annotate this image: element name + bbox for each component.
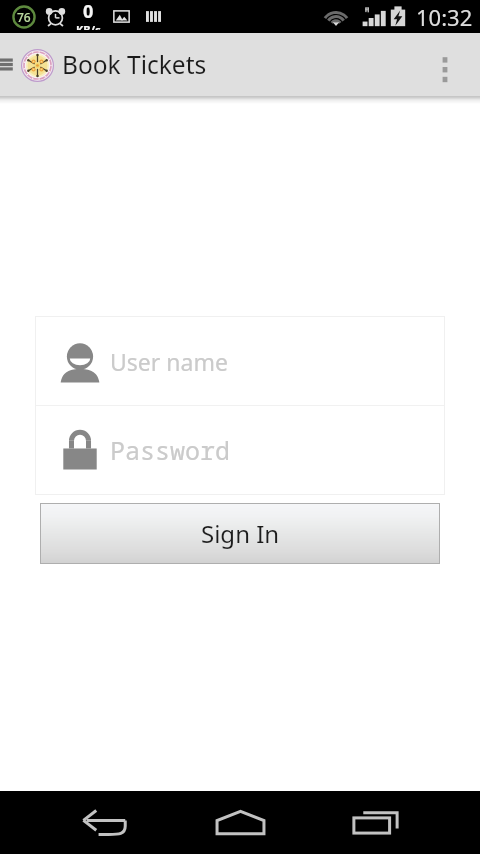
- button[interactable]: App logo: [17, 45, 57, 85]
- staticText: 10:32: [416, 2, 473, 32]
- staticText: KB/s: [76, 22, 101, 30]
- button[interactable]: Back: [63, 791, 147, 854]
- staticText: 0: [83, 0, 94, 24]
- button[interactable]: Open navigation drawer: [0, 33, 16, 96]
- button[interactable]: Password: [36, 406, 444, 494]
- staticText: 76: [17, 9, 31, 25]
- button[interactable]: Recent apps: [333, 791, 417, 854]
- button[interactable]: More options: [410, 33, 480, 96]
- staticText: Sign In: [201, 517, 280, 550]
- staticText: Password: [110, 433, 231, 467]
- button[interactable]: Home: [198, 791, 282, 854]
- staticText: Book Tickets: [62, 48, 207, 81]
- button[interactable]: User name: [36, 317, 444, 405]
- staticText: User name: [110, 346, 228, 377]
- button[interactable]: Sign In: [41, 504, 439, 563]
